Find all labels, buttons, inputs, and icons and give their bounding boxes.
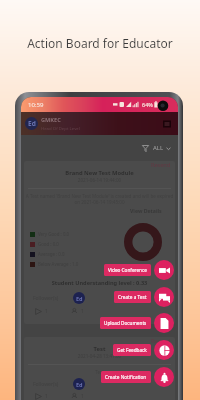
- staticText: Video Conference: [108, 267, 147, 273]
- button[interactable]: Resend: [24, 161, 175, 324]
- staticText: Brand New Test Module: [24, 169, 175, 177]
- button[interactable]: Create a Test: [21, 287, 174, 307]
- staticText: 64%: [142, 101, 153, 108]
- staticText: 2021-04-28 13:41:00: [24, 353, 175, 359]
- staticText: ALL: [153, 144, 164, 152]
- staticText: Upload Documents: [104, 320, 147, 326]
- button[interactable]: Video Conference: [21, 260, 174, 280]
- button[interactable]: Notifications: [163, 120, 171, 128]
- staticText: Test: [24, 369, 175, 375]
- staticText: Head Of Dept Level: [41, 125, 80, 131]
- button[interactable]: View Details: [130, 207, 162, 214]
- staticText: Ed: [76, 381, 83, 388]
- staticText: Ed: [76, 295, 83, 302]
- button[interactable]: Get Feedback: [21, 340, 174, 360]
- button[interactable]: Upload Documents: [21, 313, 174, 333]
- staticText: GMKEC: [41, 116, 61, 124]
- staticText: Test: [24, 345, 175, 353]
- button[interactable]: Resend: [151, 337, 171, 344]
- button[interactable]: Resend: [24, 337, 175, 400]
- staticText: Student Understanding level : 0.33: [24, 279, 175, 287]
- staticText: Create a Test: [118, 294, 147, 300]
- staticText: Ed: [28, 119, 36, 128]
- staticText: Action Board for Educator: [0, 35, 200, 51]
- button[interactable]: ALL: [142, 144, 171, 152]
- staticText: Create Notification: [105, 374, 147, 380]
- button[interactable]: Resend: [151, 161, 171, 168]
- button[interactable]: Create Notification: [21, 367, 174, 387]
- staticText: 10:59: [28, 101, 44, 109]
- staticText: Get Feedback: [117, 347, 147, 353]
